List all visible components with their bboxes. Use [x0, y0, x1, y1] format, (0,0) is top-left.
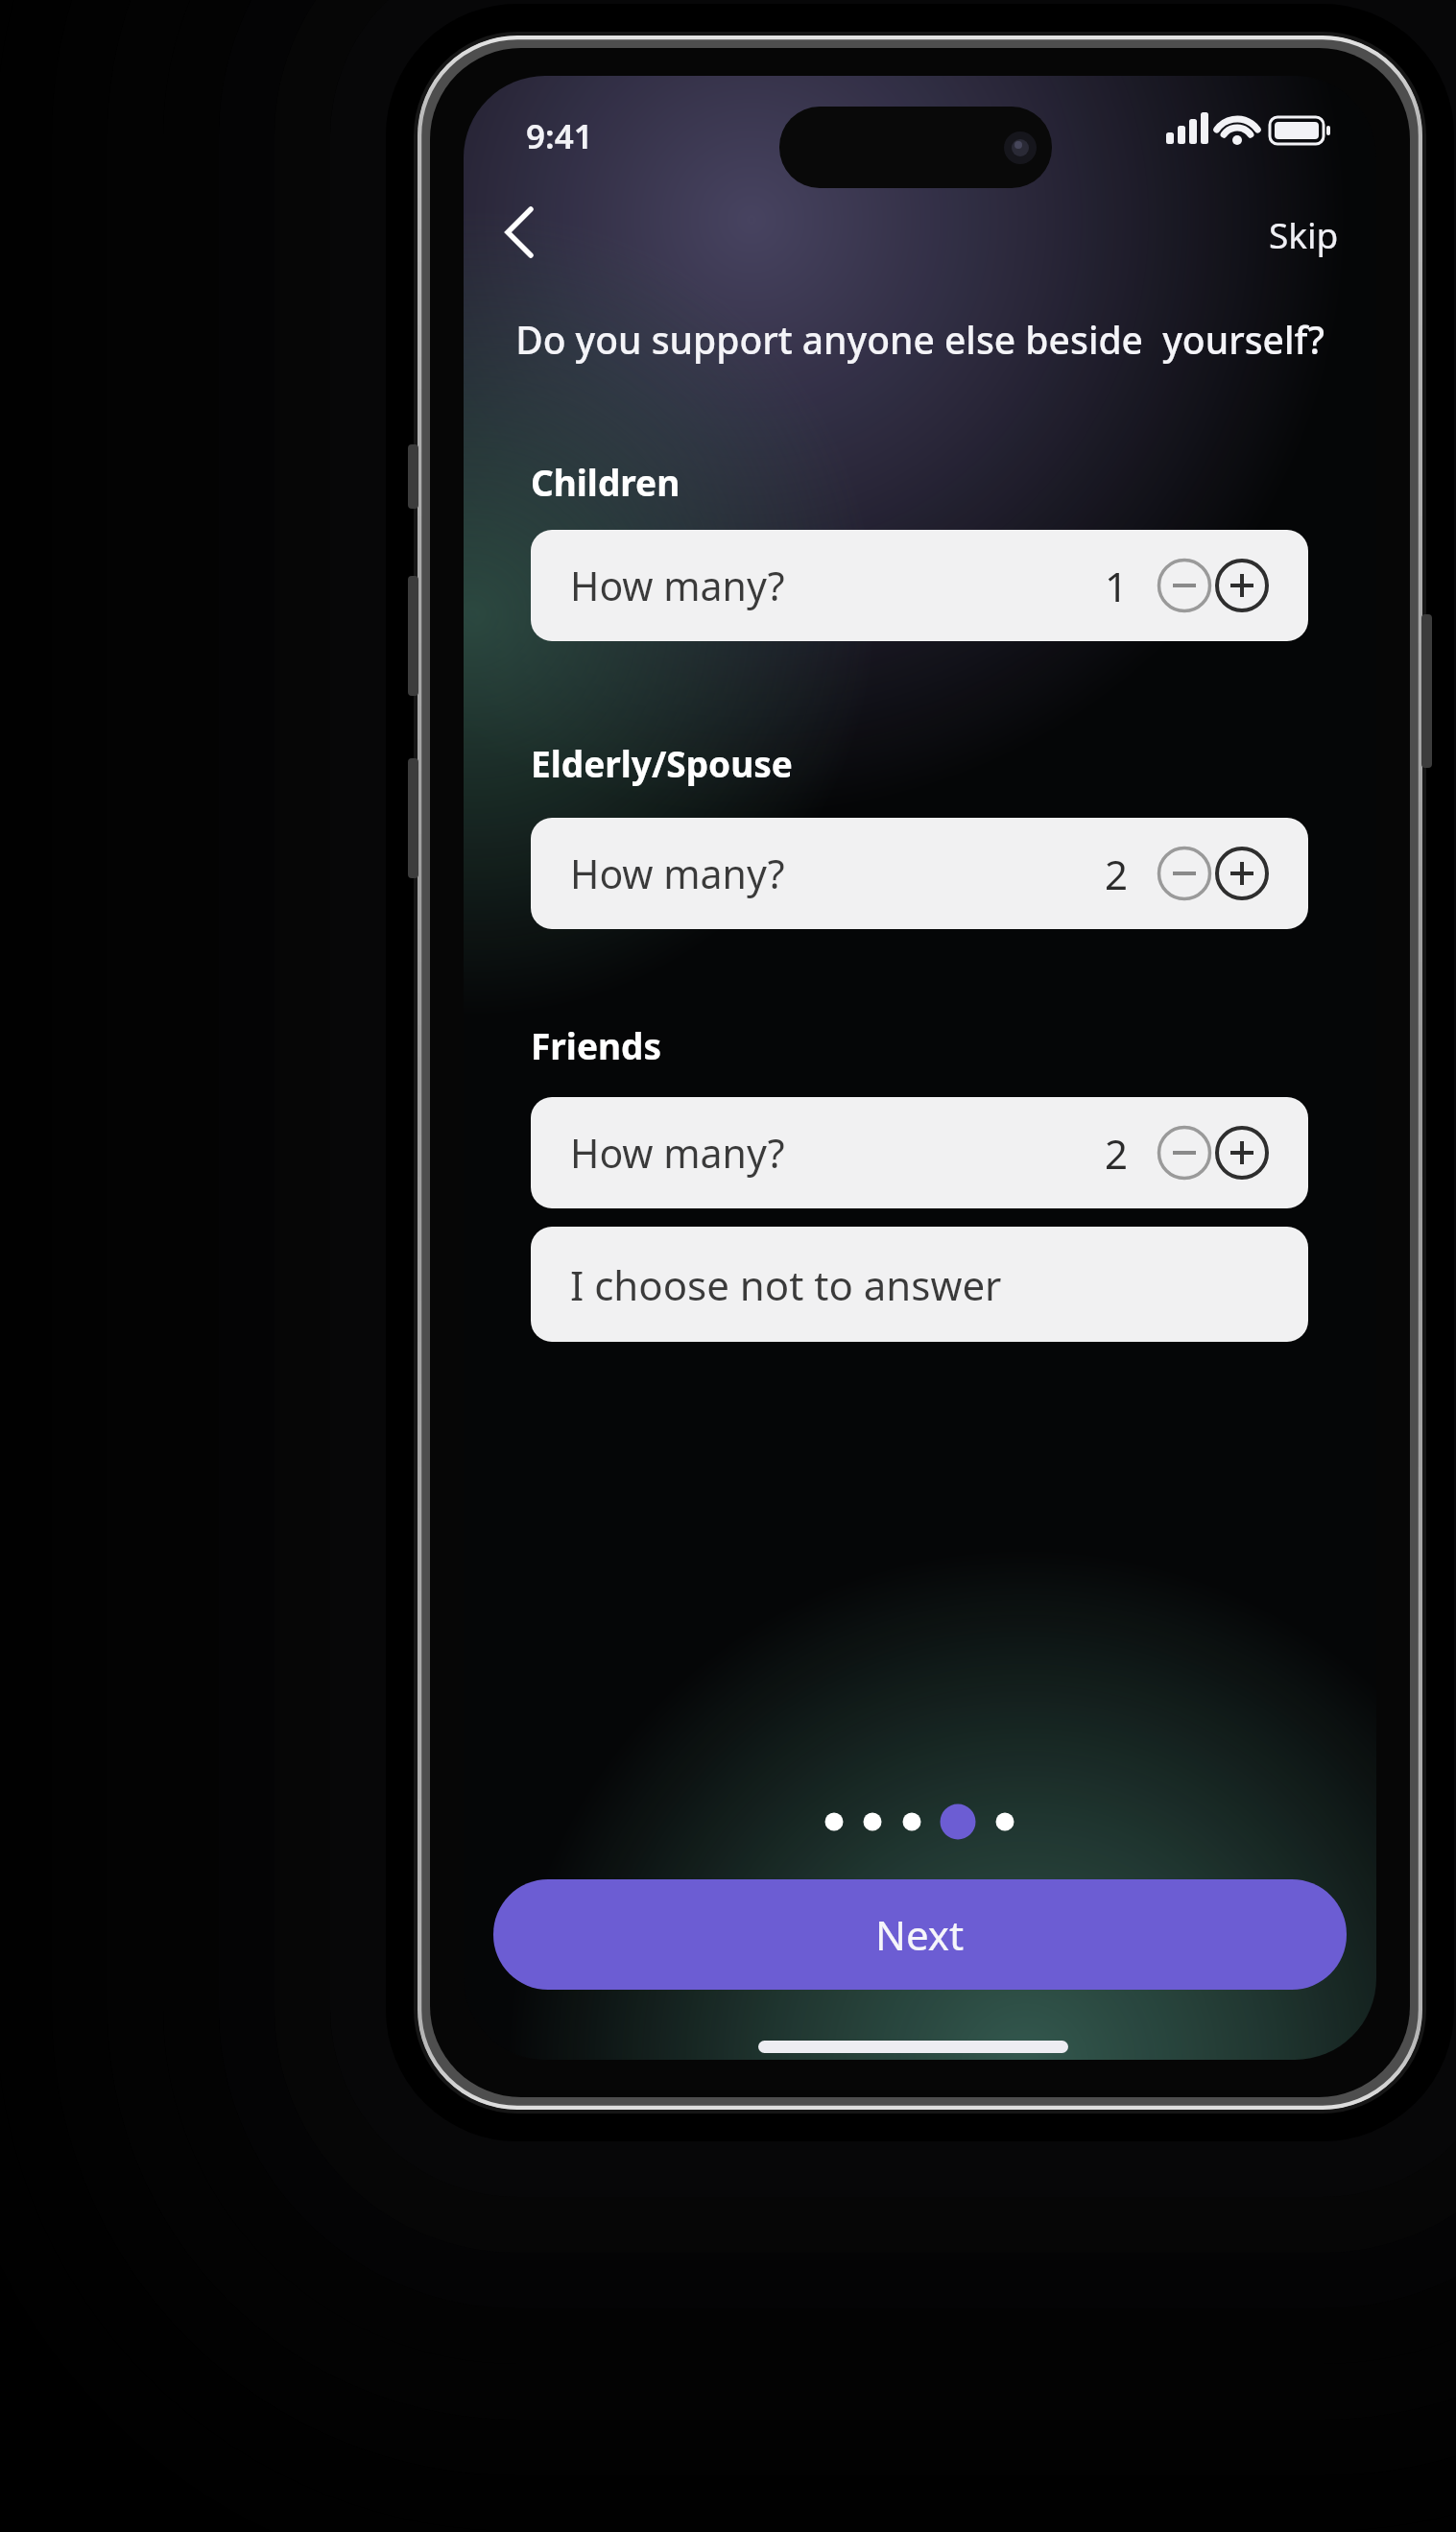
button[interactable]: I choose not to answer: [531, 1227, 1308, 1342]
staticText: 2: [1105, 1126, 1129, 1181]
button[interactable]: How many?: [531, 1097, 1308, 1208]
button[interactable]: How many?: [531, 530, 1308, 641]
staticText: How many?: [570, 1126, 785, 1180]
staticText: Friends: [531, 1021, 662, 1069]
staticText: I choose not to answer: [570, 1257, 1002, 1312]
staticText: Do you support anyone else beside yourse…: [464, 314, 1376, 365]
button[interactable]: Next: [493, 1879, 1347, 1990]
staticText: Skip: [1269, 210, 1339, 258]
staticText: How many?: [570, 847, 785, 900]
staticText: Elderly/Spouse: [531, 739, 793, 787]
button[interactable]: [492, 196, 550, 269]
staticText: 9:41: [526, 113, 593, 159]
button[interactable]: Skip: [1269, 205, 1374, 263]
staticText: 2: [1105, 847, 1129, 901]
button[interactable]: How many?: [531, 818, 1308, 929]
staticText: 1: [1105, 559, 1129, 613]
staticText: Children: [531, 458, 680, 506]
staticText: Next: [875, 1907, 965, 1962]
staticText: How many?: [570, 559, 785, 612]
